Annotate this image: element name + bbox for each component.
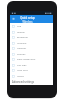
staticText: Auto sync — [17, 68, 28, 71]
staticText: Mobile — [17, 30, 25, 33]
button[interactable]: Wifi — [10, 23, 53, 29]
button[interactable]: Hotspot — [10, 45, 53, 51]
button[interactable]: About — [10, 73, 53, 79]
button[interactable]: Auto sync — [10, 67, 53, 73]
button[interactable]: Sounds — [10, 51, 53, 57]
staticText: Sounds — [17, 52, 26, 55]
button[interactable]: Navigate up — [12, 17, 15, 20]
button[interactable]: Airplane — [10, 40, 53, 46]
staticText: Airplane — [17, 41, 27, 44]
staticText: Advanced settings — [12, 80, 34, 83]
staticText: Wireless — [22, 20, 33, 24]
staticText: Bluetooth — [17, 35, 29, 38]
button[interactable]: Call logs — [10, 62, 53, 68]
button[interactable]: Mobile — [10, 29, 53, 35]
staticText: Wifi — [17, 24, 22, 27]
staticText: About — [17, 74, 24, 77]
staticText: Hotspot — [17, 46, 27, 49]
staticText: Quick setup — [20, 16, 35, 20]
staticText: Data usage limit — [17, 57, 36, 60]
button[interactable]: Data usage limit — [10, 56, 53, 62]
button[interactable]: Bluetooth — [10, 34, 53, 40]
staticText: Call logs — [17, 63, 27, 66]
button[interactable]: Quick setup — [18, 16, 36, 24]
